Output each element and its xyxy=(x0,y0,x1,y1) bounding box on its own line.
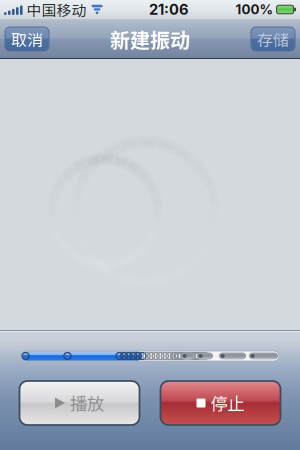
staticText: 播放 xyxy=(70,390,104,416)
button[interactable]: 存储 xyxy=(251,27,295,51)
staticText: 停止 xyxy=(210,390,244,416)
button[interactable]: 播放 xyxy=(19,381,139,425)
button[interactable]: 取消 xyxy=(5,27,49,51)
staticText: 取消 xyxy=(11,27,43,51)
staticText: 中国移动 xyxy=(27,0,87,20)
staticText: 新建振动 xyxy=(110,24,190,53)
staticText: 100% xyxy=(236,1,274,17)
staticText: 存储 xyxy=(257,27,289,51)
button[interactable]: 停止 xyxy=(160,381,280,425)
staticText: 21:06 xyxy=(149,1,189,18)
